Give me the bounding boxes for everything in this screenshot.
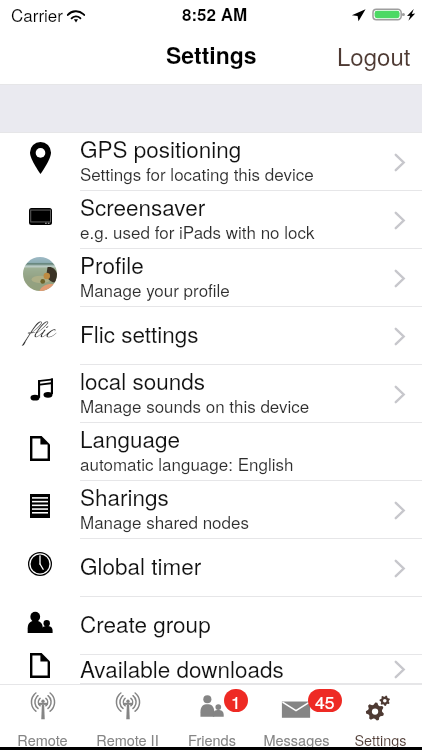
- button[interactable]: 45: [254, 685, 338, 747]
- staticText: Manage sounds on this device: [80, 393, 310, 417]
- staticText: Screensaver: [80, 190, 206, 222]
- staticText: Messages: [263, 729, 330, 747]
- staticText: 45: [315, 689, 335, 712]
- button[interactable]: Create group: [0, 597, 422, 655]
- button[interactable]: Remote: [0, 685, 85, 747]
- staticText: Sharings: [80, 480, 169, 512]
- button[interactable]: Available downloads: [0, 655, 422, 684]
- button[interactable]: Settings: [338, 685, 422, 747]
- button[interactable]: Global timer: [0, 539, 422, 597]
- button[interactable]: Screensaver: [0, 191, 422, 249]
- button[interactable]: local sounds: [0, 365, 422, 423]
- staticText: Remote II: [96, 729, 159, 747]
- button[interactable]: Language: [0, 423, 422, 481]
- staticText: 8:52 AM: [182, 2, 248, 26]
- staticText: Settings: [354, 729, 407, 747]
- staticText: Settings: [166, 38, 257, 71]
- staticText: flic: [26, 316, 54, 349]
- staticText: automatic language: English: [80, 451, 294, 475]
- staticText: Carrier: [11, 2, 63, 26]
- staticText: local sounds: [80, 364, 206, 396]
- staticText: Friends: [188, 729, 236, 747]
- button[interactable]: Logout: [326, 32, 422, 82]
- staticText: e.g. used for iPads with no lock: [80, 219, 315, 243]
- staticText: Logout: [337, 38, 411, 72]
- button[interactable]: Profile: [0, 249, 422, 307]
- staticText: Language: [80, 422, 181, 454]
- staticText: Profile: [80, 248, 144, 280]
- staticText: 1: [231, 689, 241, 712]
- staticText: GPS positioning: [80, 132, 242, 164]
- button[interactable]: 1: [170, 685, 254, 747]
- staticText: Available downloads: [80, 652, 284, 681]
- button[interactable]: Sharings: [0, 481, 422, 539]
- staticText: Flic settings: [80, 317, 199, 349]
- button[interactable]: GPS positioning: [0, 133, 422, 191]
- button[interactable]: flic: [0, 307, 422, 365]
- button[interactable]: Remote II: [85, 685, 170, 747]
- staticText: Global timer: [80, 549, 202, 581]
- staticText: Remote: [17, 729, 68, 747]
- staticText: Manage shared nodes: [80, 509, 249, 533]
- staticText: Manage your profile: [80, 277, 230, 301]
- staticText: Create group: [80, 607, 211, 639]
- staticText: Settings for locating this device: [80, 161, 314, 185]
